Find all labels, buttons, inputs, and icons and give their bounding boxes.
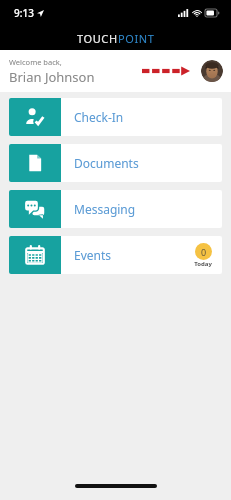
staticText: Welcome back, — [9, 57, 62, 67]
staticText: Check-In — [74, 109, 222, 125]
staticText: Brian Johnson — [9, 68, 95, 86]
staticText: Messaging — [74, 201, 222, 217]
staticText: Today — [194, 260, 212, 268]
staticText: TOUCH — [77, 31, 118, 46]
staticText: 9:13 — [14, 6, 34, 20]
staticText: POINT — [118, 31, 155, 46]
button[interactable]: Check-In — [9, 98, 222, 136]
button[interactable]: Documents — [9, 144, 222, 182]
button[interactable]: Messaging — [9, 190, 222, 228]
staticText: 0 — [201, 246, 207, 258]
staticText: Events — [74, 247, 194, 263]
button[interactable]: Profile photo — [201, 60, 223, 82]
button[interactable]: Events — [9, 236, 222, 274]
staticText: Documents — [74, 155, 222, 171]
